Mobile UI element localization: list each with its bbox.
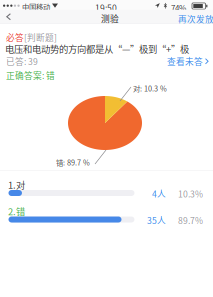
staticText: 4人	[152, 187, 166, 200]
staticText: 89.7%	[178, 214, 203, 226]
staticText: 电压和电动势的方向都是从“—”极到“+”极	[5, 42, 189, 55]
staticText: 74%	[171, 2, 186, 13]
staticText: 1.对	[8, 178, 25, 191]
staticText: 19:50	[95, 1, 117, 14]
button[interactable]: Back	[1, 10, 16, 24]
staticText: 2.错	[8, 204, 25, 218]
staticText: 10.3%	[178, 187, 203, 200]
button[interactable]: 再次发放	[175, 10, 213, 28]
staticText: 再次发放	[178, 13, 213, 25]
staticText: 正确答案: 错	[6, 69, 55, 81]
staticText: 35人	[147, 214, 166, 226]
staticText: 中国移动	[22, 1, 50, 12]
staticText: 已答: 39	[6, 55, 38, 67]
button[interactable]: 查看未答	[165, 53, 211, 69]
staticText: 测验	[101, 12, 119, 25]
staticText: 错: 89.7 %	[56, 157, 90, 168]
staticText: 查看未答	[167, 55, 203, 67]
staticText: [判断题]	[24, 31, 57, 43]
staticText: 对: 10.3 %	[133, 83, 167, 94]
staticText: 必答	[6, 31, 24, 43]
